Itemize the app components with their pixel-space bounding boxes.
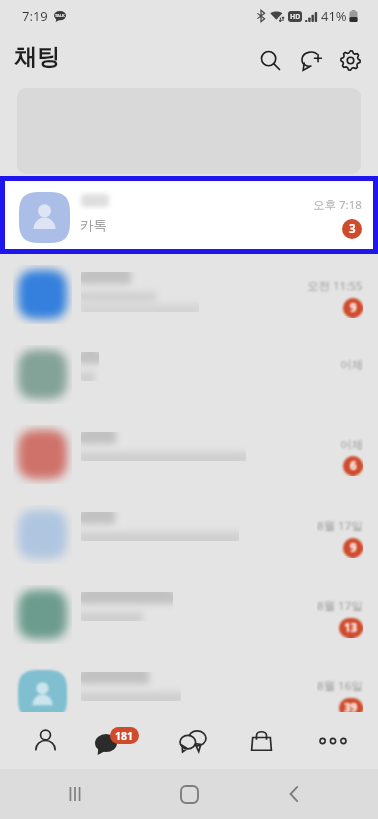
button[interactable]: Back — [259, 769, 329, 819]
staticText: 오전 11:55 — [307, 278, 363, 294]
staticText: 13 — [344, 620, 358, 636]
button[interactable]: Settings — [330, 40, 370, 80]
staticText: 8월 17일 — [317, 598, 363, 614]
staticText: 어제 — [340, 438, 363, 452]
staticText: 3 — [349, 221, 356, 237]
staticText: 8월 17일 — [317, 518, 363, 534]
staticText: 7:19 — [22, 7, 48, 25]
button[interactable]: 8월 16일 — [0, 654, 378, 734]
button[interactable]: Recents — [40, 769, 110, 819]
button[interactable]: 어제 — [0, 414, 378, 494]
button[interactable]: New chat — [290, 40, 330, 80]
button[interactable]: Chats — [83, 712, 151, 769]
staticText: HD — [290, 12, 301, 22]
staticText: 8월 16일 — [317, 678, 363, 694]
staticText: 6 — [350, 458, 357, 474]
button[interactable]: More — [299, 712, 367, 769]
button[interactable]: 8월 17일 — [0, 574, 378, 654]
staticText: 181 — [115, 729, 134, 743]
button[interactable]: Friends — [11, 712, 79, 769]
staticText: 41% — [321, 7, 347, 25]
staticText: 채팅 — [14, 43, 60, 72]
staticText: 39 — [344, 700, 358, 716]
button[interactable]: 8월 17일 — [0, 494, 378, 574]
staticText: 9 — [350, 300, 357, 316]
staticText: TALK — [55, 13, 65, 18]
staticText: 어제 — [340, 358, 363, 372]
staticText: 카톡 — [80, 217, 107, 234]
button[interactable]: Search — [250, 40, 290, 80]
button[interactable]: 어제 — [0, 334, 378, 414]
button[interactable]: Open chat — [159, 712, 227, 769]
staticText: 9 — [350, 540, 357, 556]
button[interactable]: Home — [154, 769, 224, 819]
staticText: 오후 7:18 — [313, 197, 362, 213]
button[interactable]: Shopping — [227, 712, 295, 769]
button[interactable]: 카톡 — [5, 181, 373, 249]
button[interactable]: 오전 11:55 — [0, 254, 378, 334]
